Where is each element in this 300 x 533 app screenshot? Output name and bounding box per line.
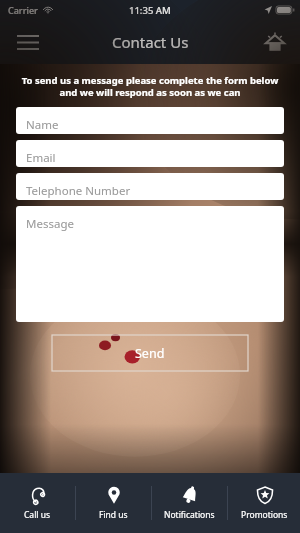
staticText: 11:35 AM [129, 4, 171, 17]
staticText: Send [135, 345, 165, 362]
button[interactable]: Email [16, 140, 284, 167]
other: Notifications [181, 486, 199, 504]
staticText: Call us [24, 509, 51, 521]
staticText: Email [26, 150, 56, 166]
staticText: To send us a message please complete the… [18, 74, 282, 99]
button[interactable]: Menu [10, 24, 46, 60]
staticText: Message [26, 216, 74, 232]
staticText: Telephone Number [26, 183, 131, 199]
other: Find us [105, 486, 123, 504]
staticText: Promotions [241, 509, 288, 521]
staticText: Contact Us [112, 32, 189, 52]
button[interactable]: Find us [76, 473, 151, 533]
button[interactable]: Name [16, 107, 284, 134]
other: Call us [29, 486, 47, 504]
other: Promotions [256, 486, 274, 504]
button[interactable]: Promotions [228, 473, 300, 533]
button[interactable]: Message [16, 206, 284, 322]
staticText: Find us [99, 509, 128, 521]
staticText: Notifications [164, 509, 215, 521]
button[interactable]: Telephone Number [16, 173, 284, 200]
button[interactable]: Call us [0, 473, 75, 533]
button[interactable]: Notifications [152, 473, 227, 533]
button[interactable]: Send [52, 335, 248, 371]
staticText: Name [26, 117, 59, 133]
button[interactable]: Home [258, 25, 292, 59]
staticText: Carrier [8, 4, 38, 16]
